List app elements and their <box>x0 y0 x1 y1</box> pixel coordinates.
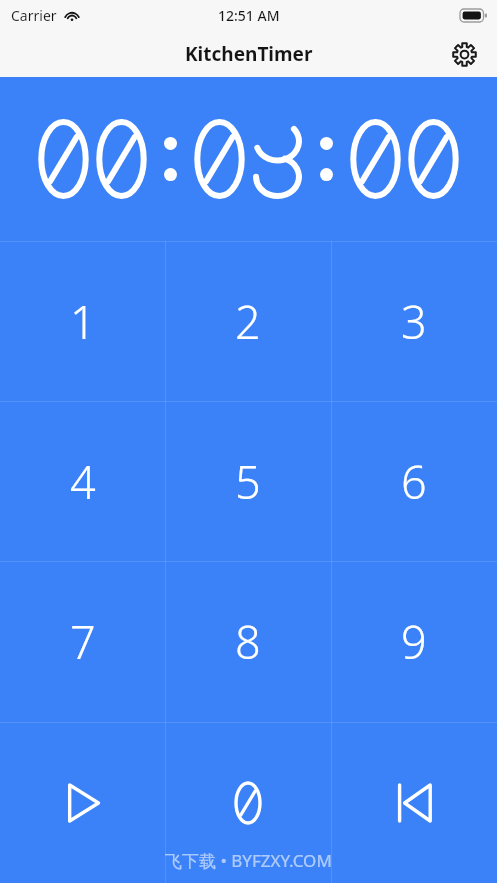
staticText: 8 <box>235 611 261 672</box>
staticText: 4 <box>70 451 96 512</box>
staticText: 5 <box>235 451 261 512</box>
staticText: KitchenTimer <box>185 41 313 67</box>
button[interactable]: 8 <box>165 561 331 722</box>
button[interactable]: Settings <box>443 33 485 75</box>
button[interactable]: 9 <box>331 561 497 722</box>
staticText: Carrier <box>11 6 57 25</box>
button[interactable]: Start timer <box>0 722 165 883</box>
staticText: 9 <box>401 611 427 672</box>
button[interactable]: 5 <box>165 401 331 561</box>
staticText: 7 <box>70 611 96 672</box>
button[interactable]: 6 <box>331 401 497 561</box>
staticText: 3 <box>401 291 427 352</box>
staticText: 6 <box>401 451 427 512</box>
staticText: 2 <box>235 291 261 352</box>
button[interactable]: 1 <box>0 241 165 401</box>
staticText: 飞下载 • BYFZXY.COM <box>165 849 332 872</box>
button[interactable] <box>165 722 331 883</box>
button[interactable]: Reset timer <box>331 722 497 883</box>
button[interactable]: 3 <box>331 241 497 401</box>
button[interactable]: 2 <box>165 241 331 401</box>
button[interactable]: 7 <box>0 561 165 722</box>
staticText: 12:51 AM <box>218 6 280 25</box>
button[interactable]: 4 <box>0 401 165 561</box>
staticText: 1 <box>70 291 96 352</box>
